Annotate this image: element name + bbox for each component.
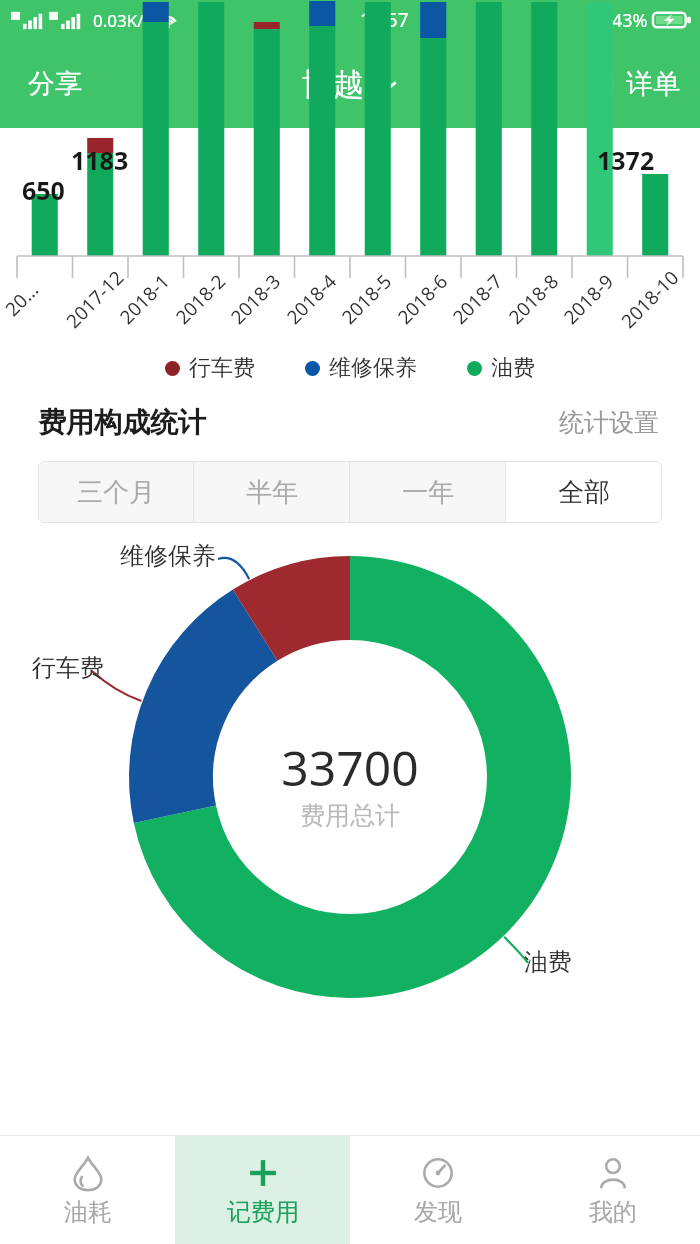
- staticText: 33700: [281, 735, 419, 800]
- staticText: 2018-4: [281, 268, 342, 330]
- staticText: 650: [22, 173, 65, 207]
- staticText: 一年: [402, 476, 454, 509]
- button[interactable]: 发现: [350, 1136, 525, 1244]
- staticText: 2018-3: [225, 268, 286, 330]
- staticText: 20...: [0, 276, 45, 322]
- staticText: 0.03K/s: [93, 9, 152, 32]
- staticText: 2018-1: [114, 268, 175, 330]
- staticText: 费用构成统计: [38, 405, 206, 440]
- button[interactable]: 博越: [290, 55, 410, 114]
- staticText: 2018-6: [392, 268, 453, 330]
- staticText: 分享: [28, 67, 82, 101]
- staticText: 维修保养: [329, 354, 417, 382]
- staticText: 全部: [558, 476, 610, 509]
- staticText: 博越: [302, 65, 364, 104]
- button[interactable]: 我的: [525, 1136, 700, 1244]
- button[interactable]: 三个月: [38, 461, 194, 523]
- button[interactable]: 一年: [350, 461, 506, 523]
- staticText: 统计设置: [559, 407, 659, 438]
- staticText: 2018-7: [447, 268, 508, 330]
- button[interactable]: 详单: [572, 57, 692, 111]
- staticText: 2018-10: [615, 264, 685, 334]
- staticText: 1372: [597, 143, 655, 177]
- staticText: 油费: [524, 947, 572, 977]
- button[interactable]: 记费用: [175, 1136, 350, 1244]
- staticText: 三个月: [77, 476, 155, 509]
- staticText: 油费: [491, 354, 535, 382]
- button[interactable]: 分享: [8, 55, 102, 113]
- staticText: 2017-12: [60, 264, 130, 334]
- staticText: 行车费: [189, 354, 255, 382]
- button[interactable]: 全部: [506, 461, 662, 523]
- staticText: 2018-8: [503, 268, 564, 330]
- staticText: 我的: [589, 1197, 637, 1227]
- staticText: 维修保养: [120, 541, 216, 571]
- staticText: 记费用: [227, 1197, 299, 1227]
- staticText: 油耗: [64, 1197, 112, 1227]
- staticText: 10:57: [360, 7, 409, 33]
- staticText: 2018-2: [170, 268, 231, 330]
- staticText: 43%: [612, 8, 648, 33]
- other: 详单: [584, 68, 616, 100]
- staticText: 发现: [414, 1197, 462, 1227]
- staticText: 2018-5: [336, 268, 397, 330]
- button[interactable]: 油耗: [0, 1136, 175, 1244]
- staticText: 1183: [71, 143, 129, 177]
- staticText: 半年: [246, 476, 298, 509]
- staticText: 行车费: [32, 653, 104, 683]
- button[interactable]: 统计设置: [556, 404, 662, 441]
- staticText: 费用总计: [300, 800, 400, 831]
- button[interactable]: 半年: [194, 461, 350, 523]
- staticText: 2018-9: [558, 268, 619, 330]
- staticText: 详单: [626, 67, 680, 101]
